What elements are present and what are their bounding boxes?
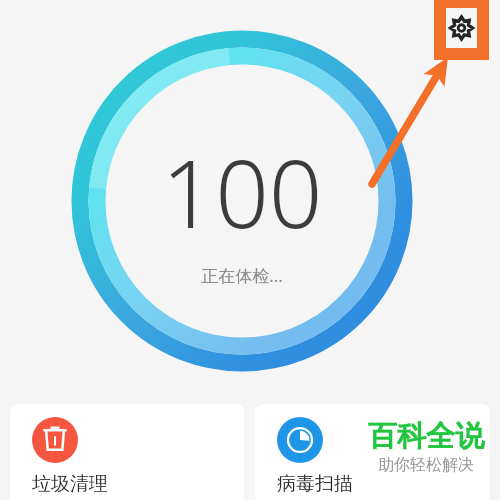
button[interactable]: 垃圾清理 [10,404,244,500]
staticText: 正在体检... [201,264,283,287]
staticText: 百科全说 [368,418,484,455]
staticText: 病毒扫描 [277,472,353,496]
staticText: 垃圾清理 [32,472,108,496]
button[interactable]: 病毒扫描 [255,404,490,500]
staticText: 100 [161,128,323,256]
button[interactable]: Settings [440,2,483,54]
staticText: 助你轻松解决 [378,455,474,475]
